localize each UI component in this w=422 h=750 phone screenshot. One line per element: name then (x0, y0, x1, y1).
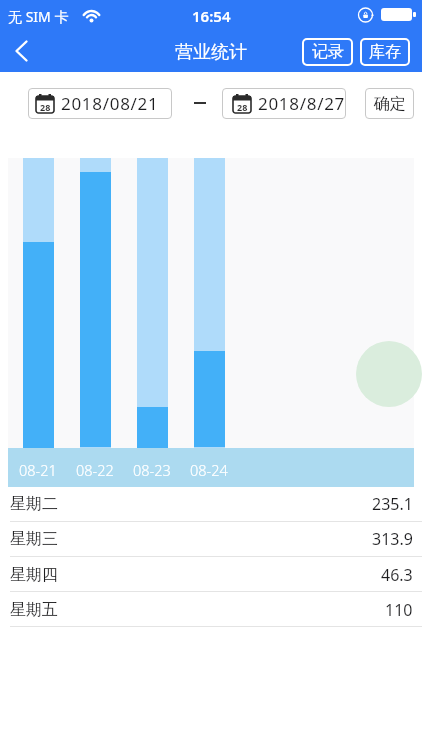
button[interactable]: 库存 (360, 38, 410, 66)
staticText: 无 SIM 卡 (8, 7, 69, 26)
staticText: 08-22 (76, 460, 114, 480)
button[interactable]: 星期二 (0, 486, 422, 521)
button[interactable]: 28 (222, 88, 346, 119)
button[interactable]: 记录 (302, 38, 353, 66)
staticText: 星期二 (10, 494, 58, 514)
staticText: 08-23 (133, 460, 171, 480)
staticText: 库存 (369, 42, 401, 62)
staticText: 28 (40, 101, 51, 113)
staticText: 星期三 (10, 529, 58, 549)
staticText: 08-24 (190, 460, 228, 480)
staticText: 110 (385, 599, 413, 621)
staticText: 2018/8/27 (258, 92, 346, 115)
staticText: 235.1 (372, 493, 413, 515)
staticText: 313.9 (372, 528, 413, 550)
button[interactable] (14, 40, 29, 62)
staticText: 营业统计 (175, 41, 247, 64)
button[interactable]: 确定 (365, 88, 414, 119)
staticText: 08-21 (19, 460, 57, 480)
staticText: 确定 (374, 94, 406, 114)
button[interactable]: 星期五 (0, 592, 422, 627)
staticText: 星期四 (10, 565, 58, 585)
button[interactable]: 星期三 (0, 521, 422, 556)
button[interactable]: 28 (28, 88, 172, 119)
button[interactable]: 星期四 (0, 557, 422, 592)
staticText: 16:54 (192, 6, 231, 26)
staticText: 28 (237, 101, 248, 113)
staticText: 2018/08/21 (61, 92, 159, 115)
staticText: 记录 (312, 42, 344, 62)
staticText: 46.3 (381, 564, 413, 586)
staticText: 星期五 (10, 600, 58, 620)
